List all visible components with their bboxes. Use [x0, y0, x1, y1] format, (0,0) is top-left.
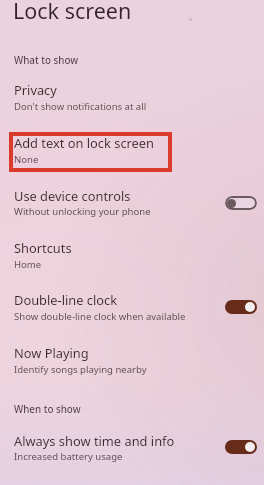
staticText: Identify songs playing nearby	[14, 363, 147, 376]
staticText: Home	[14, 258, 42, 271]
staticText: Privacy	[14, 81, 57, 99]
staticText: Now Playing	[14, 344, 89, 362]
button[interactable]: Double-line clock	[0, 285, 264, 333]
staticText: Add text on lock screen	[14, 134, 155, 152]
staticText: Use device controls	[14, 187, 131, 205]
button[interactable]: Toggle, on	[225, 300, 257, 314]
button[interactable]: Shortcuts	[0, 233, 264, 281]
button[interactable]: Toggle, off	[225, 196, 257, 210]
staticText: What to show	[14, 54, 79, 67]
staticText: Increased battery usage	[14, 450, 123, 463]
staticText: Shortcuts	[14, 239, 72, 257]
button[interactable]: Use device controls	[0, 180, 264, 228]
staticText: Show double-line clock when available	[14, 310, 186, 323]
staticText: When to show	[14, 403, 81, 416]
button[interactable]: Add text on lock screen	[0, 127, 264, 175]
button[interactable]: Always show time and info	[0, 425, 264, 473]
staticText: Always show time and info	[14, 432, 175, 450]
staticText: Without unlocking your phone	[14, 205, 151, 218]
button[interactable]: Privacy	[0, 74, 264, 122]
button[interactable]: Toggle, on	[225, 440, 257, 454]
staticText: Double-line clock	[14, 291, 118, 309]
staticText: Don't show notifications at all	[14, 100, 147, 113]
staticText: Lock screen	[13, 0, 132, 25]
staticText: None	[14, 153, 39, 166]
button[interactable]: Now Playing	[0, 338, 264, 386]
